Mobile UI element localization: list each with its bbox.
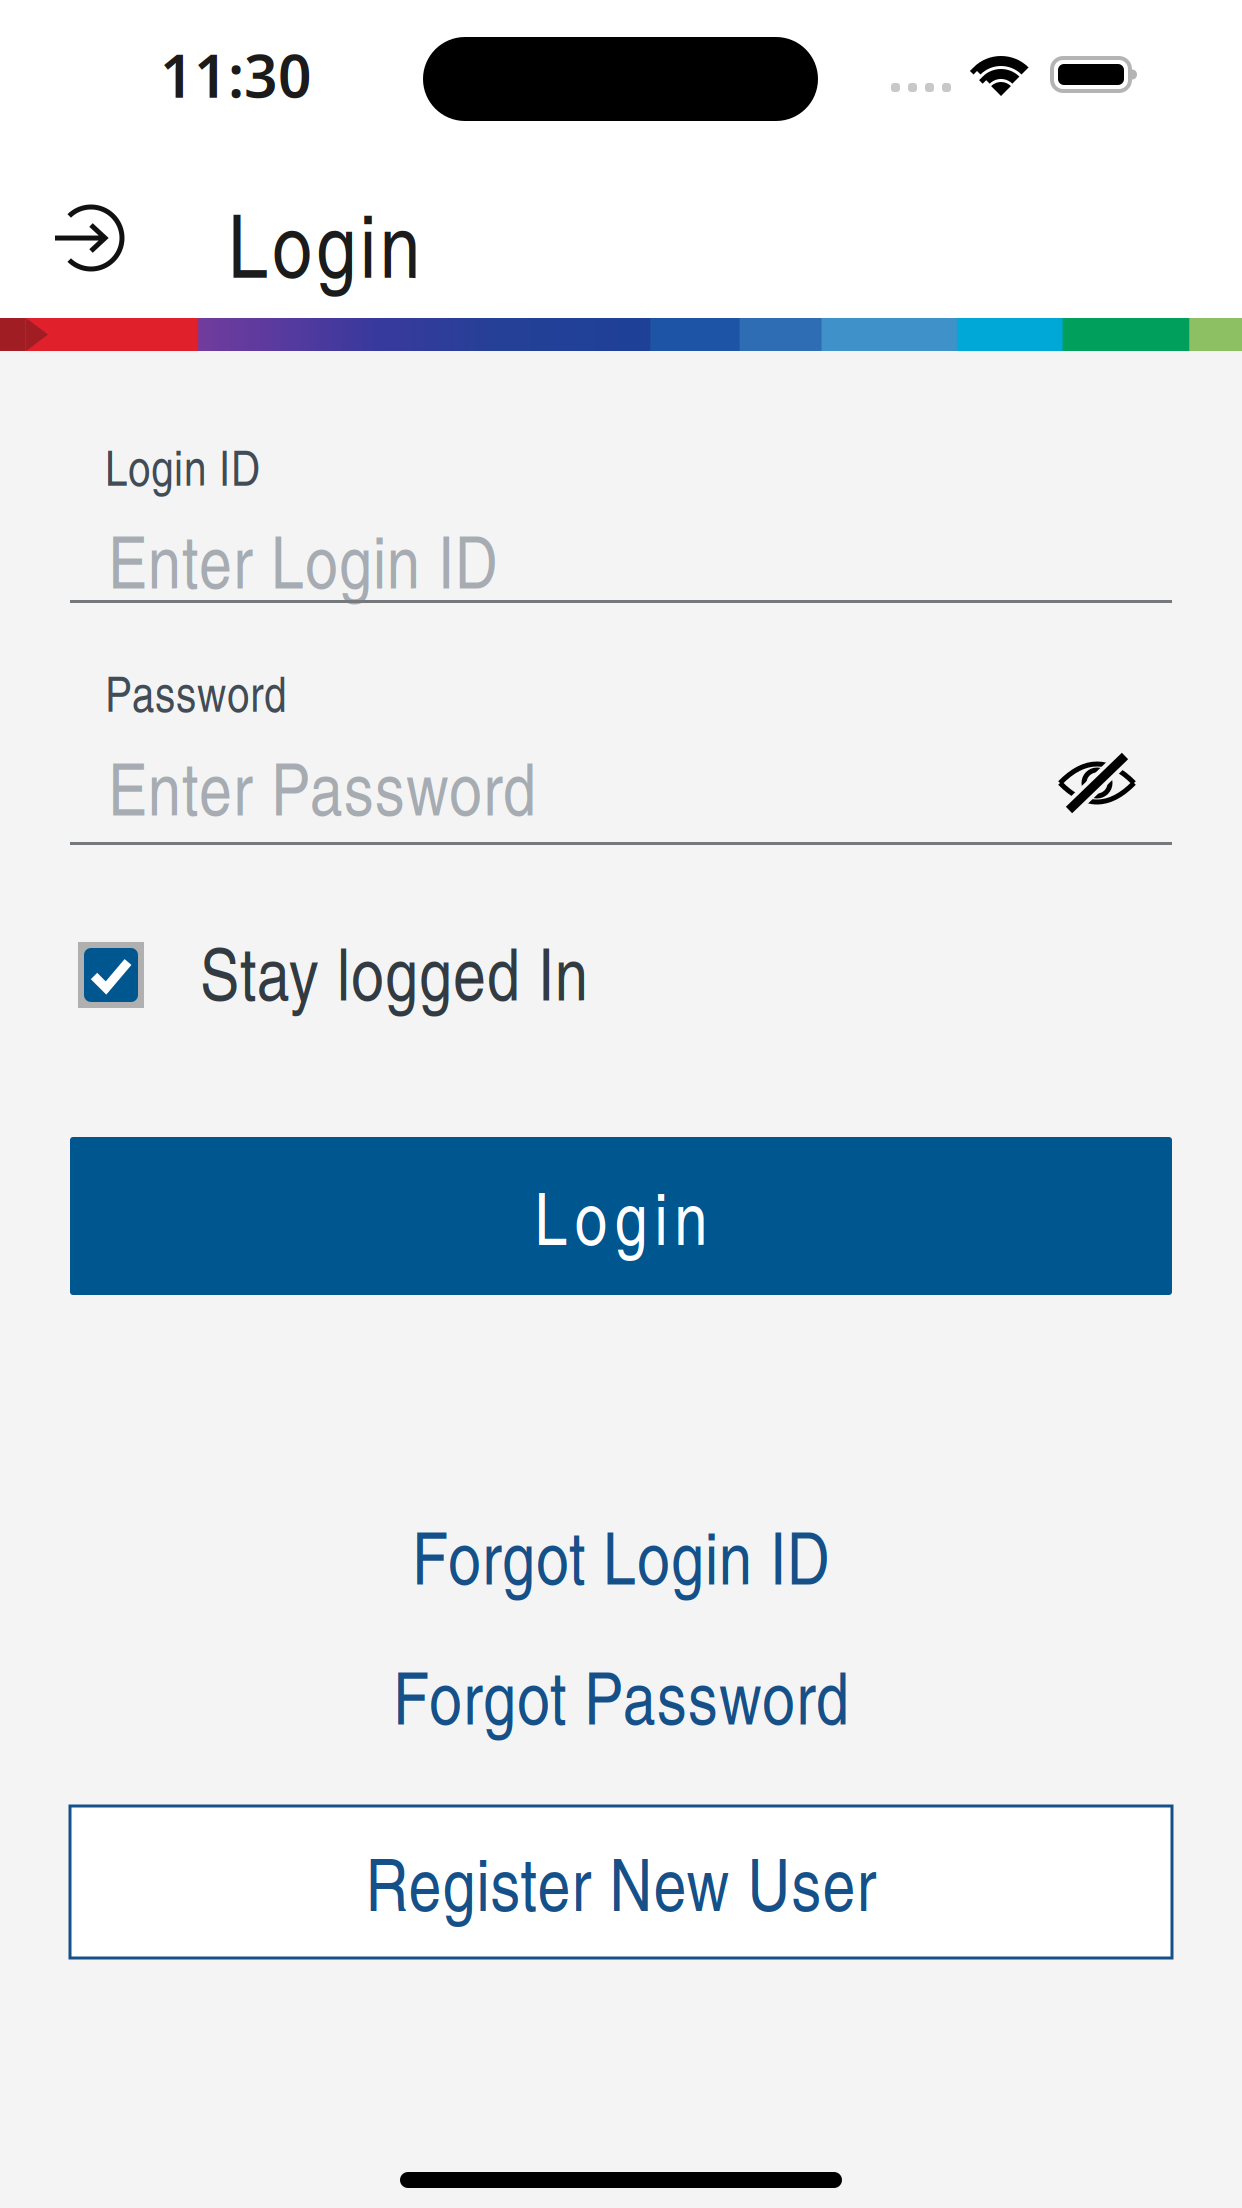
staticText: Enter Login ID — [108, 510, 498, 609]
staticText: Login — [534, 1167, 707, 1265]
staticText: Login ID — [105, 432, 260, 500]
staticText: Register New User — [365, 1833, 876, 1931]
staticText: Login — [228, 182, 420, 303]
staticText: 11:30 — [160, 36, 312, 114]
staticText: Forgot Password — [393, 1646, 849, 1745]
staticText: Forgot Login ID — [412, 1506, 830, 1605]
staticText: Stay logged In — [200, 922, 588, 1021]
button[interactable]: Forgot Password — [0, 1646, 1242, 1745]
staticText: Enter Password — [108, 737, 536, 836]
staticText: Password — [105, 658, 286, 726]
button[interactable]: Show password — [1057, 751, 1137, 813]
button[interactable]: Forgot Login ID — [0, 1506, 1242, 1605]
button[interactable]: Login — [55, 204, 125, 272]
button[interactable]: Register New User — [70, 1806, 1172, 1958]
button[interactable]: Stay logged In — [70, 922, 1172, 1021]
button[interactable]: Login — [70, 1137, 1172, 1295]
